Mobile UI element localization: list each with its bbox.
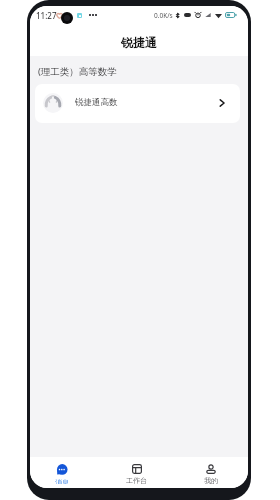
- button[interactable]: Workbench: [100, 457, 173, 488]
- staticText: 工作台: [126, 476, 147, 484]
- other: Workbench: [132, 464, 142, 474]
- other: Profile: [206, 464, 216, 474]
- staticText: 锐捷通高数: [75, 97, 118, 108]
- staticText: 0.0K/s: [154, 11, 173, 20]
- button[interactable]: Messages: [30, 457, 98, 488]
- staticText: 消息: [55, 478, 69, 484]
- staticText: 锐捷通: [121, 35, 157, 50]
- other: Messages: [56, 464, 68, 476]
- staticText: 11:27: [36, 10, 57, 21]
- staticText: (理工类）高等数学: [38, 65, 117, 78]
- button[interactable]: Profile: [174, 457, 247, 488]
- staticText: 我的: [204, 476, 218, 484]
- button[interactable]: 锐捷通高数: [35, 84, 240, 123]
